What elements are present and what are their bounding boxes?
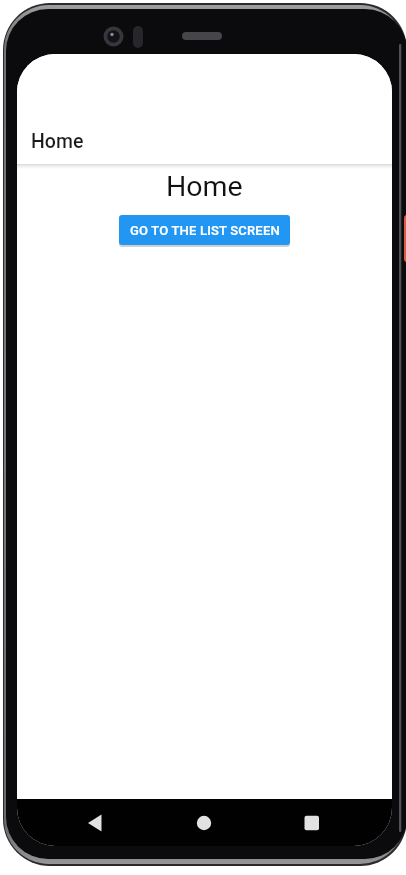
staticText: Home — [31, 130, 84, 153]
button[interactable] — [17, 799, 142, 846]
button[interactable] — [267, 799, 392, 846]
button[interactable]: GO TO THE LIST SCREEN — [119, 215, 290, 245]
button[interactable] — [142, 799, 267, 846]
staticText: GO TO THE LIST SCREEN — [130, 223, 280, 238]
staticText: Home — [166, 170, 243, 203]
